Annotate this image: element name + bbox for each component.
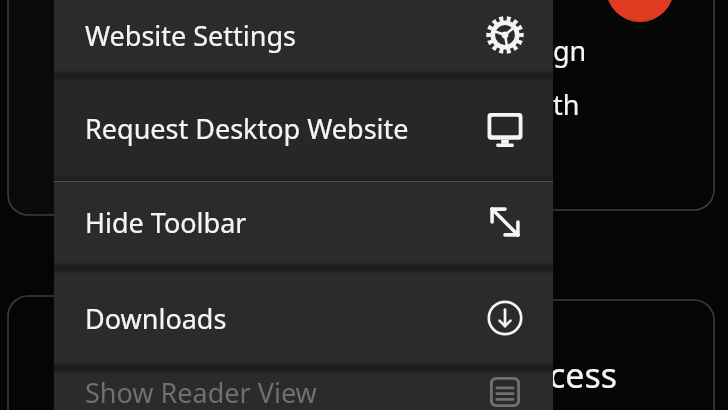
staticText: Request Desktop Website xyxy=(85,110,483,147)
other: Downloads xyxy=(487,300,523,336)
other: Show reader view xyxy=(488,375,522,409)
button[interactable]: Downloads xyxy=(54,274,553,362)
staticText: Show Reader View xyxy=(85,374,483,408)
staticText: Downloads xyxy=(85,300,483,337)
staticText: Website Settings xyxy=(85,17,483,54)
staticText: gn xyxy=(553,32,587,69)
button[interactable]: Website Settings xyxy=(54,0,553,70)
other: Request desktop website xyxy=(486,110,524,148)
button[interactable]: Show Reader View xyxy=(54,374,553,410)
button[interactable]: Hide Toolbar xyxy=(54,182,553,262)
staticText: cess xyxy=(549,352,618,398)
staticText: th xyxy=(553,86,580,123)
other: Hide toolbar xyxy=(486,203,524,241)
button[interactable]: Request Desktop Website xyxy=(54,82,553,175)
other: Website settings xyxy=(485,15,525,55)
staticText: Hide Toolbar xyxy=(85,204,483,241)
